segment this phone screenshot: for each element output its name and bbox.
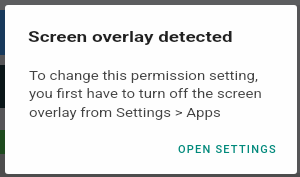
staticText: To change this permission setting, you f… [29, 67, 262, 120]
staticText: OPEN SETTINGS [178, 143, 277, 156]
staticText: Screen overlay detected [28, 27, 233, 45]
button[interactable]: OPEN SETTINGS [170, 136, 285, 163]
